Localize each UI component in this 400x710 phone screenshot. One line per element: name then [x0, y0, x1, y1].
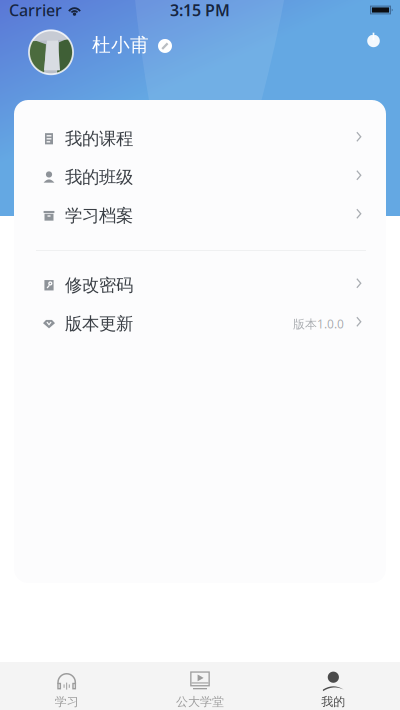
staticText: 杜小甫 — [92, 33, 149, 56]
staticText: 版本1.0.0 — [293, 316, 344, 332]
button[interactable]: 修改密码 — [14, 266, 386, 304]
button[interactable]: 版本更新 — [14, 304, 386, 343]
button[interactable]: 学习 — [0, 662, 133, 710]
button[interactable]: 学习档案 — [14, 196, 386, 235]
staticText: 版本更新 — [65, 313, 133, 334]
staticText: Carrier — [9, 0, 62, 21]
staticText: 我的课程 — [65, 128, 133, 149]
staticText: 公大学堂 — [176, 694, 224, 709]
button[interactable]: 公大学堂 — [133, 662, 267, 710]
button[interactable]: 我的课程 — [14, 119, 386, 158]
staticText: 3:15 PM — [170, 0, 230, 21]
button[interactable]: 我的班级 — [14, 158, 386, 196]
staticText: 我的班级 — [65, 167, 133, 188]
staticText: 我的 — [321, 694, 345, 709]
staticText: 修改密码 — [65, 275, 133, 296]
button[interactable]: Log out — [366, 32, 381, 48]
staticText: 学习 — [55, 694, 79, 709]
button[interactable]: 我的 — [267, 662, 400, 710]
staticText: 学习档案 — [65, 205, 133, 226]
